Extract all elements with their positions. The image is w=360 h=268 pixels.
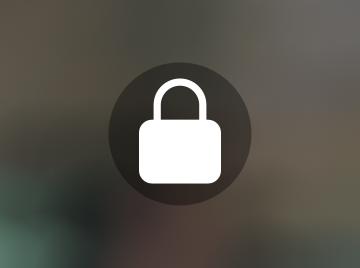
button[interactable]: Locked — [108, 62, 251, 205]
